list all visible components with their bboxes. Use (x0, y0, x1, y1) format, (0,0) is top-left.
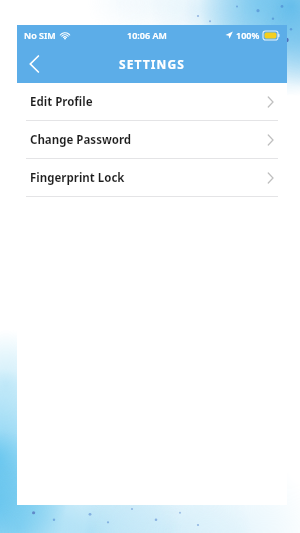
button[interactable]: Back (17, 47, 51, 81)
staticText: Fingerprint Lock (30, 170, 125, 186)
button[interactable]: Fingerprint Lock (17, 159, 287, 196)
staticText: 10:06 AM (127, 29, 167, 41)
staticText: 100% (236, 29, 260, 41)
staticText: No SIM (24, 29, 56, 41)
staticText: Edit Profile (30, 94, 93, 110)
staticText: Change Password (30, 132, 132, 148)
button[interactable]: Change Password (17, 121, 287, 158)
staticText: SETTINGS (119, 56, 185, 72)
button[interactable]: Edit Profile (17, 83, 287, 120)
